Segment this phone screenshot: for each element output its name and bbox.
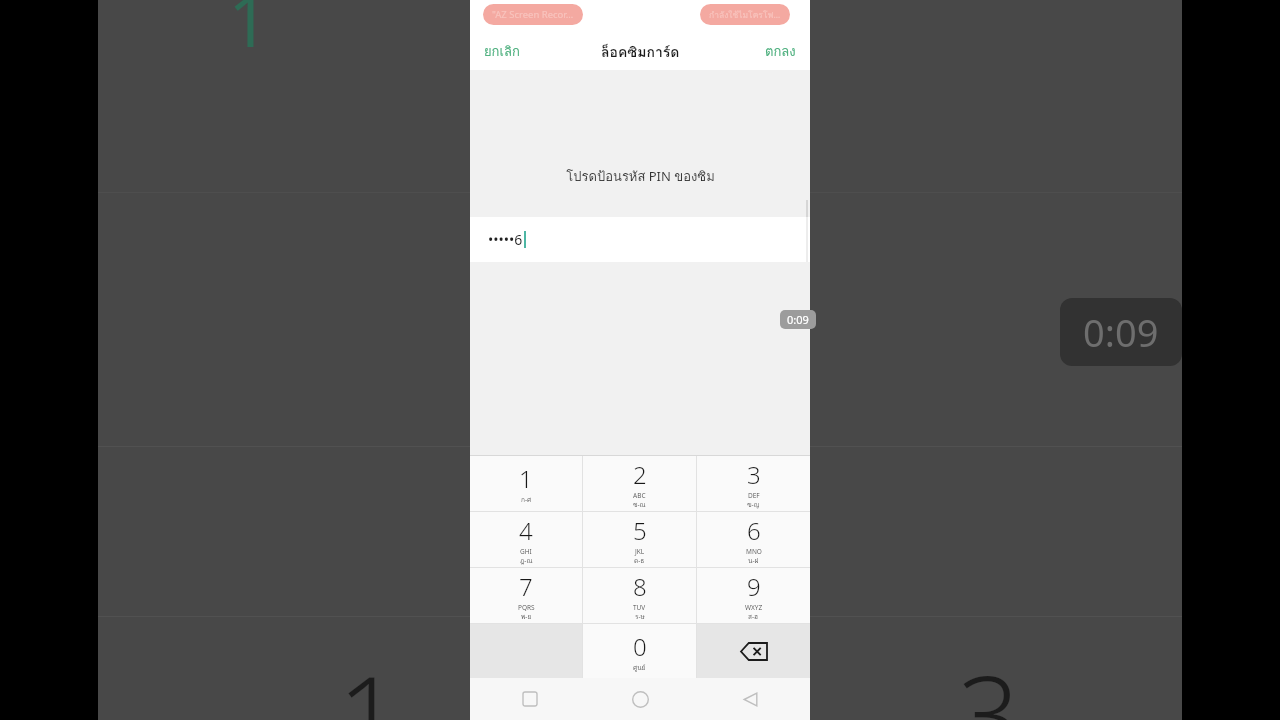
staticText: 3 [958, 640, 1020, 720]
staticText: พ-ย [521, 612, 532, 622]
staticText: ฎ-ณ [520, 556, 533, 566]
button[interactable]: 0 [583, 624, 696, 678]
staticText: ร-ษ [635, 612, 645, 622]
staticText: ศูนย์ [633, 663, 646, 673]
button[interactable]: Recent apps [510, 679, 550, 719]
button[interactable]: 5 [583, 512, 696, 567]
button[interactable]: กำลังใช้ไมโครโฟ… [700, 4, 790, 25]
staticText: "AZ Screen Recor… [492, 8, 574, 21]
button[interactable]: 6 [697, 512, 810, 567]
staticText: 0:09 [787, 312, 809, 327]
staticText: โปรดป้อนรหัส PIN ของซิม [566, 166, 715, 187]
button[interactable]: 9 [697, 568, 810, 623]
staticText: 1 [338, 640, 400, 720]
button[interactable]: 7 [470, 568, 582, 623]
staticText: JKL [635, 547, 645, 556]
button[interactable]: Home [620, 679, 660, 719]
staticText: 4 [519, 514, 533, 547]
staticText: ซ-ณ [633, 500, 646, 510]
staticText: 1 [519, 462, 533, 495]
button[interactable]: •••••6 [470, 217, 810, 262]
staticText: ตกลง [765, 41, 796, 62]
staticText: 6 [747, 514, 761, 547]
button[interactable]: 1 [470, 456, 582, 511]
staticText: 2 [633, 458, 647, 491]
button[interactable]: ยกเลิก [470, 34, 534, 69]
staticText: 3 [747, 458, 761, 491]
staticText: WXYZ [745, 603, 763, 612]
button[interactable]: ตกลง [751, 34, 810, 69]
staticText: ส-ฮ [748, 612, 759, 622]
button[interactable]: 4 [470, 512, 582, 567]
staticText: ยกเลิก [484, 41, 520, 62]
button[interactable]: 2 [583, 456, 696, 511]
staticText: 7 [519, 570, 533, 603]
staticText: ABC [633, 491, 646, 500]
staticText: 9 [747, 570, 761, 603]
staticText: •••••6 [488, 230, 523, 249]
staticText: PQRS [518, 603, 535, 612]
staticText: น-ฝ [748, 556, 759, 566]
staticText: GHI [520, 547, 532, 556]
staticText: กำลังใช้ไมโครโฟ… [709, 8, 781, 22]
staticText: 8 [633, 570, 647, 603]
button[interactable]: "AZ Screen Recor… [483, 4, 583, 25]
staticText: 1 [228, 0, 270, 68]
button[interactable]: 3 [697, 456, 810, 511]
staticText: MNO [746, 547, 762, 556]
staticText: 0:09 [1083, 306, 1159, 358]
staticText: 0 [633, 630, 647, 663]
staticText: ก-ศ [521, 495, 532, 505]
staticText: DEF [748, 491, 760, 500]
button[interactable]: Back [730, 679, 770, 719]
staticText: ด-ธ [634, 556, 645, 566]
button[interactable]: Backspace [697, 624, 810, 678]
staticText: ฃ-ญ [747, 500, 760, 510]
staticText: ล็อคซิมการ์ด [601, 41, 680, 63]
staticText: TUV [633, 603, 646, 612]
staticText: 5 [633, 514, 647, 547]
button[interactable]: 8 [583, 568, 696, 623]
